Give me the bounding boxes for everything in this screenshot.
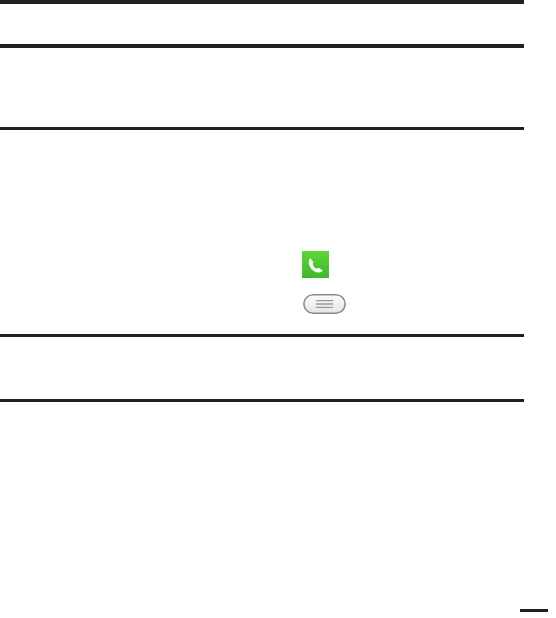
button[interactable]: Menu bbox=[303, 294, 346, 314]
button[interactable]: Phone bbox=[302, 251, 329, 278]
